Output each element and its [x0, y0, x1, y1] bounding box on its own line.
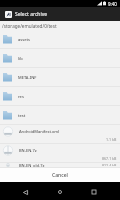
staticText: BN-EN.7z [19, 148, 37, 153]
staticText: 1.1 kB [106, 137, 117, 142]
staticText: lib [18, 56, 23, 61]
button[interactable]: BN-EN_old.7z [0, 163, 120, 167]
staticText: META-INF [18, 75, 37, 80]
button[interactable]: AndroidManifest.xml [0, 125, 120, 144]
button[interactable]: test [0, 106, 120, 125]
staticText: /storage/emulated/0/test [2, 23, 57, 29]
button[interactable]: BN-EN.7z [0, 144, 120, 163]
staticText: Cancel [52, 172, 68, 179]
staticText: 9:40 [108, 1, 117, 7]
button[interactable]: res [0, 87, 120, 106]
button[interactable]: ZArchiver [5, 11, 12, 18]
staticText: test [18, 113, 26, 118]
staticText: Select archive [15, 11, 48, 18]
button[interactable]: META-INF [0, 68, 120, 87]
staticText: BN-EN_old.7z [19, 163, 45, 167]
button[interactable]: Recents [86, 184, 102, 200]
button[interactable]: Cancel [0, 168, 120, 182]
button[interactable]: assets [0, 30, 120, 49]
button[interactable]: Home [52, 184, 68, 200]
button[interactable]: lib [0, 49, 120, 68]
staticText: assets [18, 37, 30, 42]
staticText: res [18, 94, 24, 99]
button[interactable]: Back [17, 184, 33, 200]
staticText: 812.4 kB [102, 163, 117, 166]
staticText: AndroidManifest.xml [19, 129, 60, 134]
staticText: 867.1 kB [102, 156, 117, 161]
